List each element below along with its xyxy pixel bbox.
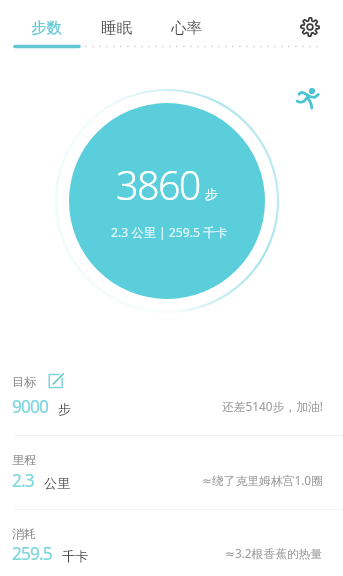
button[interactable]: Settings xyxy=(296,13,324,41)
staticText: ≈绕了克里姆林宫1.0圈 xyxy=(202,472,323,488)
button[interactable]: 里程 xyxy=(0,444,343,506)
staticText: 2.3 公里 | 259.5 千卡 xyxy=(111,224,228,241)
staticText: 步 xyxy=(205,186,218,202)
button[interactable]: 心率 xyxy=(159,11,214,45)
staticText: 259.5 xyxy=(12,542,52,566)
button[interactable]: 目标 xyxy=(0,364,343,426)
staticText: ≈3.2根香蕉的热量 xyxy=(225,545,323,561)
staticText: 里程 xyxy=(12,452,36,467)
staticText: 2.3 xyxy=(12,469,34,493)
staticText: 千卡 xyxy=(62,548,89,565)
button[interactable]: 消耗 xyxy=(0,518,343,576)
staticText: 9000 xyxy=(12,395,48,419)
staticText: 消耗 xyxy=(12,526,36,541)
staticText: 步数 xyxy=(31,18,62,38)
button[interactable]: 睡眠 xyxy=(89,11,144,45)
button[interactable]: 步数 xyxy=(19,11,74,45)
staticText: 公里 xyxy=(44,475,71,492)
staticText: 步 xyxy=(58,401,72,418)
staticText: 还差5140步，加油! xyxy=(222,398,323,414)
staticText: 3860 xyxy=(116,158,200,212)
staticText: 目标 xyxy=(12,374,36,389)
button[interactable]: Activity xyxy=(295,85,321,111)
staticText: 睡眠 xyxy=(101,18,132,38)
staticText: 心率 xyxy=(171,18,202,38)
